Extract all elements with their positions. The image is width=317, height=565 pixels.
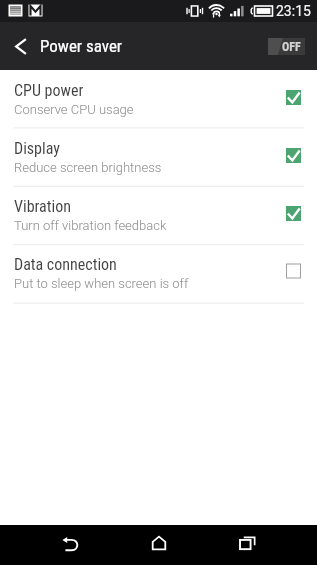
staticText: Put to sleep when screen is off <box>14 276 189 291</box>
button[interactable]: Recents <box>203 525 291 565</box>
staticText: Conserve CPU usage <box>14 102 134 117</box>
button[interactable]: Back <box>0 22 40 70</box>
staticText: Display <box>14 139 60 158</box>
button[interactable]: Data connection <box>0 244 317 302</box>
staticText: Data connection <box>14 255 117 274</box>
staticText: Power saver <box>40 36 123 56</box>
staticText: CPU power <box>14 81 84 100</box>
staticText: Reduce screen brightness <box>14 160 162 175</box>
button[interactable]: Vibration <box>0 186 317 244</box>
staticText: Vibration <box>14 197 71 216</box>
button[interactable]: Power saver, off <box>268 38 305 55</box>
button[interactable]: Back <box>26 525 115 565</box>
staticText: OFF <box>282 40 301 54</box>
button[interactable]: CPU power <box>0 70 317 128</box>
staticText: 23:15 <box>276 3 311 19</box>
button[interactable]: Display <box>0 128 317 186</box>
staticText: Turn off vibration feedback <box>14 218 167 233</box>
button[interactable]: Home <box>115 525 203 565</box>
